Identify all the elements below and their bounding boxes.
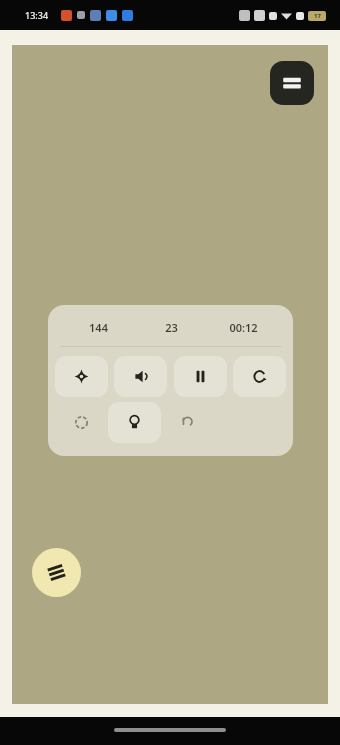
button[interactable]: Light <box>108 402 161 443</box>
button[interactable]: Loop <box>233 356 286 397</box>
button[interactable]: Undo <box>161 402 214 443</box>
staticText: 00:12 <box>229 320 258 335</box>
staticText: 13:34 <box>25 9 49 21</box>
button[interactable]: Layers <box>270 61 314 105</box>
staticText: 17 <box>314 12 321 20</box>
button[interactable]: Target <box>55 356 108 397</box>
button[interactable]: Volume <box>114 356 167 397</box>
button[interactable]: Pause <box>174 356 227 397</box>
button[interactable]: Record <box>55 402 108 443</box>
button[interactable]: Menu <box>32 548 81 597</box>
staticText: 23 <box>165 320 178 335</box>
staticText: 144 <box>89 320 108 335</box>
